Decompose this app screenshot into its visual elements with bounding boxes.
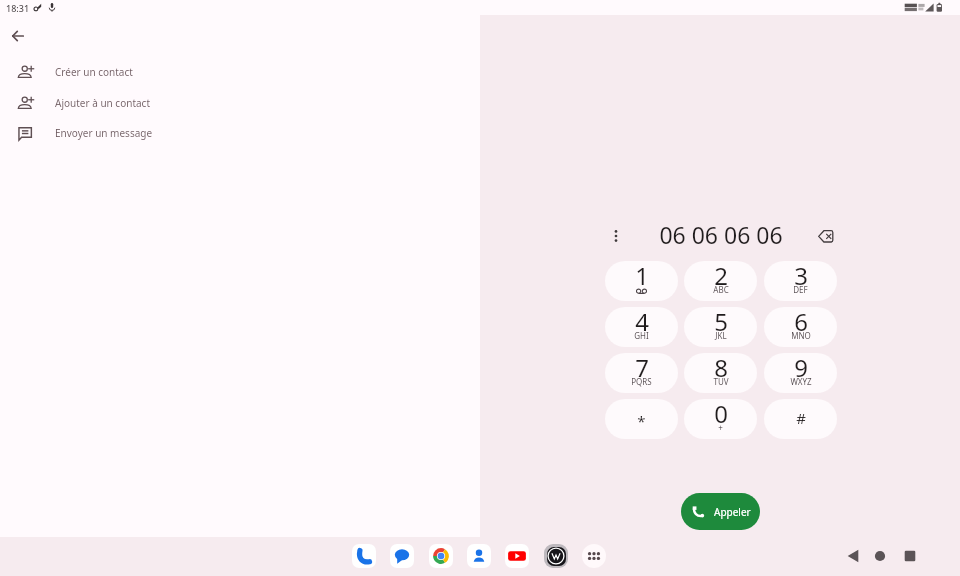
button[interactable]: App <box>544 544 568 568</box>
button[interactable]: Home <box>868 544 892 568</box>
button[interactable]: All apps <box>582 544 606 568</box>
button[interactable]: 9 <box>764 353 837 393</box>
button[interactable]: Contacts <box>467 544 491 568</box>
staticText: 5 <box>714 307 728 338</box>
button[interactable]: Envoyer un message <box>0 118 480 148</box>
button[interactable]: 7 <box>605 353 678 393</box>
staticText: 3 <box>794 261 808 292</box>
button[interactable]: 2 <box>684 261 757 301</box>
staticText: 6 <box>794 307 808 338</box>
button[interactable]: 8 <box>684 353 757 393</box>
staticText: + <box>718 422 723 433</box>
button[interactable]: Back <box>841 544 865 568</box>
staticText: * <box>637 411 646 431</box>
button[interactable]: 3 <box>764 261 837 301</box>
button[interactable]: 6 <box>764 307 837 347</box>
button[interactable]: 1 <box>605 261 678 301</box>
button[interactable]: Appeler <box>681 493 760 530</box>
staticText: 0 <box>714 399 728 430</box>
button[interactable]: 5 <box>684 307 757 347</box>
staticText: 1 <box>635 261 649 292</box>
button[interactable]: Messages <box>390 544 414 568</box>
staticText: Créer un contact <box>55 65 133 79</box>
staticText: Appeler <box>714 505 751 519</box>
staticText: MNO <box>791 330 811 341</box>
staticText: ABC <box>713 284 729 295</box>
staticText: DEF <box>793 284 808 295</box>
button[interactable]: 4 <box>605 307 678 347</box>
staticText: TUV <box>713 376 729 387</box>
staticText: 2 <box>714 261 728 292</box>
staticText: 4 <box>635 307 649 338</box>
staticText: 06 06 06 06 <box>659 219 783 247</box>
staticText: 7 <box>635 353 649 384</box>
staticText: GHI <box>634 330 649 341</box>
button[interactable]: Recents <box>898 544 922 568</box>
staticText: JKL <box>715 330 727 341</box>
button[interactable]: * <box>605 399 678 439</box>
staticText: 8 <box>714 353 728 384</box>
staticText: # <box>796 408 806 428</box>
staticText: PQRS <box>631 376 652 387</box>
button[interactable]: More options <box>607 227 625 245</box>
button[interactable]: Phone <box>352 544 376 568</box>
button[interactable]: # <box>764 399 837 439</box>
button[interactable]: Ajouter à un contact <box>0 88 480 118</box>
staticText: Ajouter à un contact <box>55 96 151 110</box>
button[interactable]: Back <box>2 20 34 52</box>
button[interactable]: Backspace <box>815 226 835 246</box>
staticText: 9 <box>794 353 808 384</box>
button[interactable]: Créer un contact <box>0 57 480 87</box>
button[interactable]: YouTube <box>505 544 529 568</box>
button[interactable]: 0 <box>684 399 757 439</box>
staticText: Envoyer un message <box>55 126 153 140</box>
button[interactable]: Chrome <box>429 544 453 568</box>
staticText: 18:31 <box>6 2 30 14</box>
staticText: WXYZ <box>790 376 812 387</box>
